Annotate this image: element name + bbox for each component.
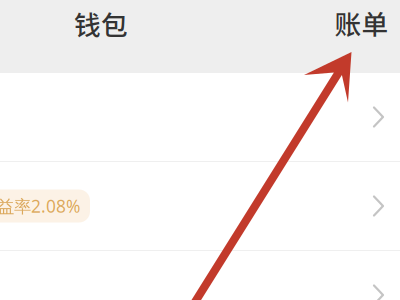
button[interactable]: 零钱通 收益率2.08% (0, 162, 400, 250)
button[interactable]: 银行卡 (0, 251, 400, 300)
staticText: 钱包 (74, 4, 128, 43)
staticText: 账单 (334, 3, 388, 42)
button[interactable]: 账单 (326, 0, 396, 48)
button[interactable]: 零钱 (0, 73, 400, 161)
staticText: 收益率2.08% (0, 194, 80, 217)
